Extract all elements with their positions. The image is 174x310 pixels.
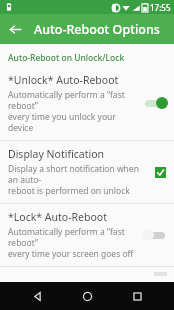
button[interactable]: *Lock* Auto-Reboot	[0, 204, 174, 266]
staticText: *Lock* Auto-Reboot	[8, 210, 107, 224]
button[interactable]: Recent apps	[124, 283, 150, 309]
button[interactable]: Vibrate on lock	[0, 267, 174, 282]
staticText: Display a short notification when an aut…	[8, 163, 148, 196]
button[interactable]: Back	[24, 283, 50, 309]
staticText: Auto-Reboot on Unlock/Lock	[8, 52, 125, 64]
button[interactable]: Home	[74, 283, 100, 309]
staticText: *Unlock* Auto-Reboot	[8, 73, 119, 87]
button[interactable]: Back	[4, 18, 26, 40]
staticText: Automatically perform a “fast reboot” ev…	[8, 89, 138, 133]
button[interactable]: *Unlock* Auto-Reboot	[0, 67, 174, 140]
staticText: Auto-Reboot Options	[34, 21, 160, 38]
button[interactable]: Display Notification	[0, 141, 174, 203]
staticText: 17:55	[150, 2, 171, 13]
staticText: Display Notification	[8, 147, 104, 161]
staticText: Automatically perform a “fast reboot” ev…	[8, 226, 138, 259]
